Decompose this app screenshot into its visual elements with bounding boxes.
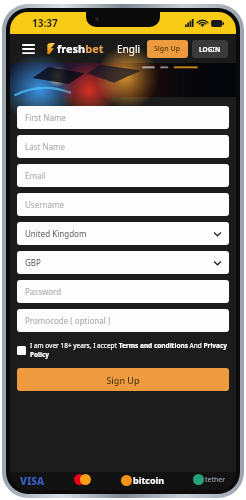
staticText: freshbet bbox=[57, 41, 104, 56]
staticText: I am over 18+ years, I accept Terms and … bbox=[30, 341, 229, 359]
button[interactable]: Sign Up bbox=[147, 40, 188, 58]
staticText: First Name bbox=[25, 112, 66, 123]
staticText: Last Name bbox=[25, 141, 66, 152]
staticText: Sign Up bbox=[154, 44, 181, 54]
button[interactable]: Menu bbox=[18, 39, 38, 59]
staticText: tether bbox=[205, 475, 226, 485]
button[interactable]: freshbet bbox=[46, 41, 104, 56]
button[interactable]: Promocode ( optional ) bbox=[17, 309, 229, 332]
button[interactable]: Sign Up bbox=[17, 368, 229, 391]
button[interactable]: GBP bbox=[17, 251, 229, 274]
button[interactable]: First Name bbox=[17, 106, 229, 129]
staticText: United Kingdom bbox=[25, 228, 87, 239]
staticText: GBP bbox=[25, 257, 41, 268]
button[interactable] bbox=[10, 63, 236, 97]
staticText: Username bbox=[25, 199, 64, 210]
button[interactable]: United Kingdom bbox=[17, 222, 229, 245]
staticText: Sign Up bbox=[106, 374, 140, 386]
button[interactable]: Email bbox=[17, 164, 229, 187]
button[interactable]: Engli bbox=[117, 42, 141, 56]
staticText: Password bbox=[25, 286, 62, 297]
button[interactable]: I am over 18+ years, I accept Terms and … bbox=[17, 341, 229, 359]
button[interactable]: Last Name bbox=[17, 135, 229, 158]
button[interactable]: Password bbox=[17, 280, 229, 303]
staticText: 13:37 bbox=[32, 16, 58, 30]
staticText: Email bbox=[25, 170, 46, 181]
staticText: LOGIN bbox=[199, 45, 221, 54]
staticText: Promocode ( optional ) bbox=[25, 315, 111, 326]
staticText: bitcoin bbox=[133, 474, 165, 486]
button[interactable]: LOGIN bbox=[192, 40, 228, 58]
button[interactable]: Username bbox=[17, 193, 229, 216]
staticText: VISA bbox=[20, 474, 45, 488]
